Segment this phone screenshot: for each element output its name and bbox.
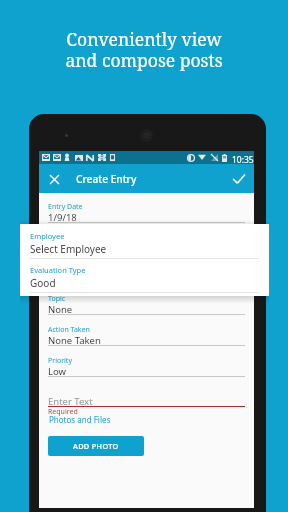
button[interactable]: Priority bbox=[48, 356, 245, 377]
staticText: Topic bbox=[48, 294, 66, 304]
staticText: Create Entry bbox=[76, 172, 137, 186]
button[interactable]: Employee bbox=[48, 233, 245, 254]
staticText: Employee bbox=[48, 233, 81, 243]
staticText: Entry Date bbox=[48, 202, 83, 212]
button[interactable]: Photos and Files bbox=[49, 414, 111, 425]
button[interactable]: Entry Date bbox=[48, 202, 245, 223]
staticText: None bbox=[48, 303, 73, 316]
button[interactable]: Topic bbox=[48, 294, 245, 315]
staticText: Action Taken bbox=[48, 325, 90, 335]
button[interactable]: Employee bbox=[30, 231, 259, 259]
staticText: 1/9/18 bbox=[48, 211, 77, 224]
staticText: Enter Text bbox=[48, 395, 93, 408]
staticText: Select Employee bbox=[30, 242, 107, 256]
button[interactable]: ADD PHOTO bbox=[48, 436, 144, 456]
staticText: Conveniently view and compose posts bbox=[65, 27, 223, 72]
staticText: 10:35 bbox=[232, 154, 254, 166]
staticText: Good bbox=[30, 276, 56, 290]
staticText: Employee bbox=[30, 231, 65, 241]
staticText: Evaluation Type bbox=[48, 264, 100, 274]
staticText: Good bbox=[48, 273, 73, 286]
button[interactable]: Close bbox=[44, 169, 64, 189]
staticText: Select Employee bbox=[48, 242, 121, 255]
staticText: Low bbox=[48, 365, 67, 378]
staticText: Required bbox=[48, 407, 78, 417]
button[interactable]: Evaluation Type bbox=[48, 264, 245, 285]
button[interactable]: Action Taken bbox=[48, 325, 245, 346]
staticText: Evaluation Type bbox=[30, 265, 86, 275]
staticText: ADD PHOTO bbox=[73, 441, 119, 451]
staticText: None Taken bbox=[48, 334, 101, 347]
button[interactable]: Evaluation Type bbox=[30, 265, 259, 293]
staticText: Priority bbox=[48, 356, 72, 366]
button[interactable]: Save bbox=[229, 169, 249, 189]
